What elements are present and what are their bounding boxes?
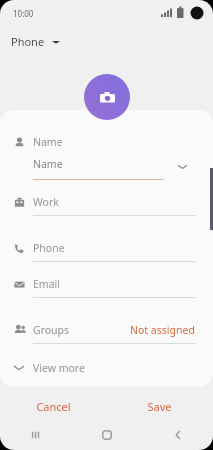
button[interactable]: Phone xyxy=(11,34,60,49)
button[interactable]: Email xyxy=(0,274,213,298)
button[interactable]: Add photo xyxy=(84,74,130,120)
button[interactable]: Phone xyxy=(0,238,213,262)
staticText: Cancel xyxy=(36,399,71,414)
button[interactable]: Recents xyxy=(0,420,71,450)
button[interactable]: Back xyxy=(142,420,213,450)
staticText: 10:00 xyxy=(13,8,34,19)
staticText: Work xyxy=(33,195,59,209)
staticText: Email xyxy=(33,277,60,291)
button[interactable]: Groups xyxy=(0,320,213,344)
staticText: Phone xyxy=(11,34,45,49)
staticText: Groups xyxy=(33,323,70,337)
button[interactable]: Home xyxy=(71,420,142,450)
staticText: Name xyxy=(33,157,63,171)
button[interactable]: Name xyxy=(0,132,213,152)
button[interactable]: Save xyxy=(106,395,213,417)
staticText: Save xyxy=(147,399,172,414)
button[interactable]: Name xyxy=(0,152,213,180)
staticText: Name xyxy=(33,135,63,149)
button[interactable]: View more xyxy=(0,358,213,378)
button[interactable]: Cancel xyxy=(0,395,106,417)
button[interactable]: Work xyxy=(0,192,213,216)
staticText: Phone xyxy=(33,241,65,255)
staticText: Not assigned xyxy=(130,323,195,337)
staticText: View more xyxy=(33,361,85,375)
